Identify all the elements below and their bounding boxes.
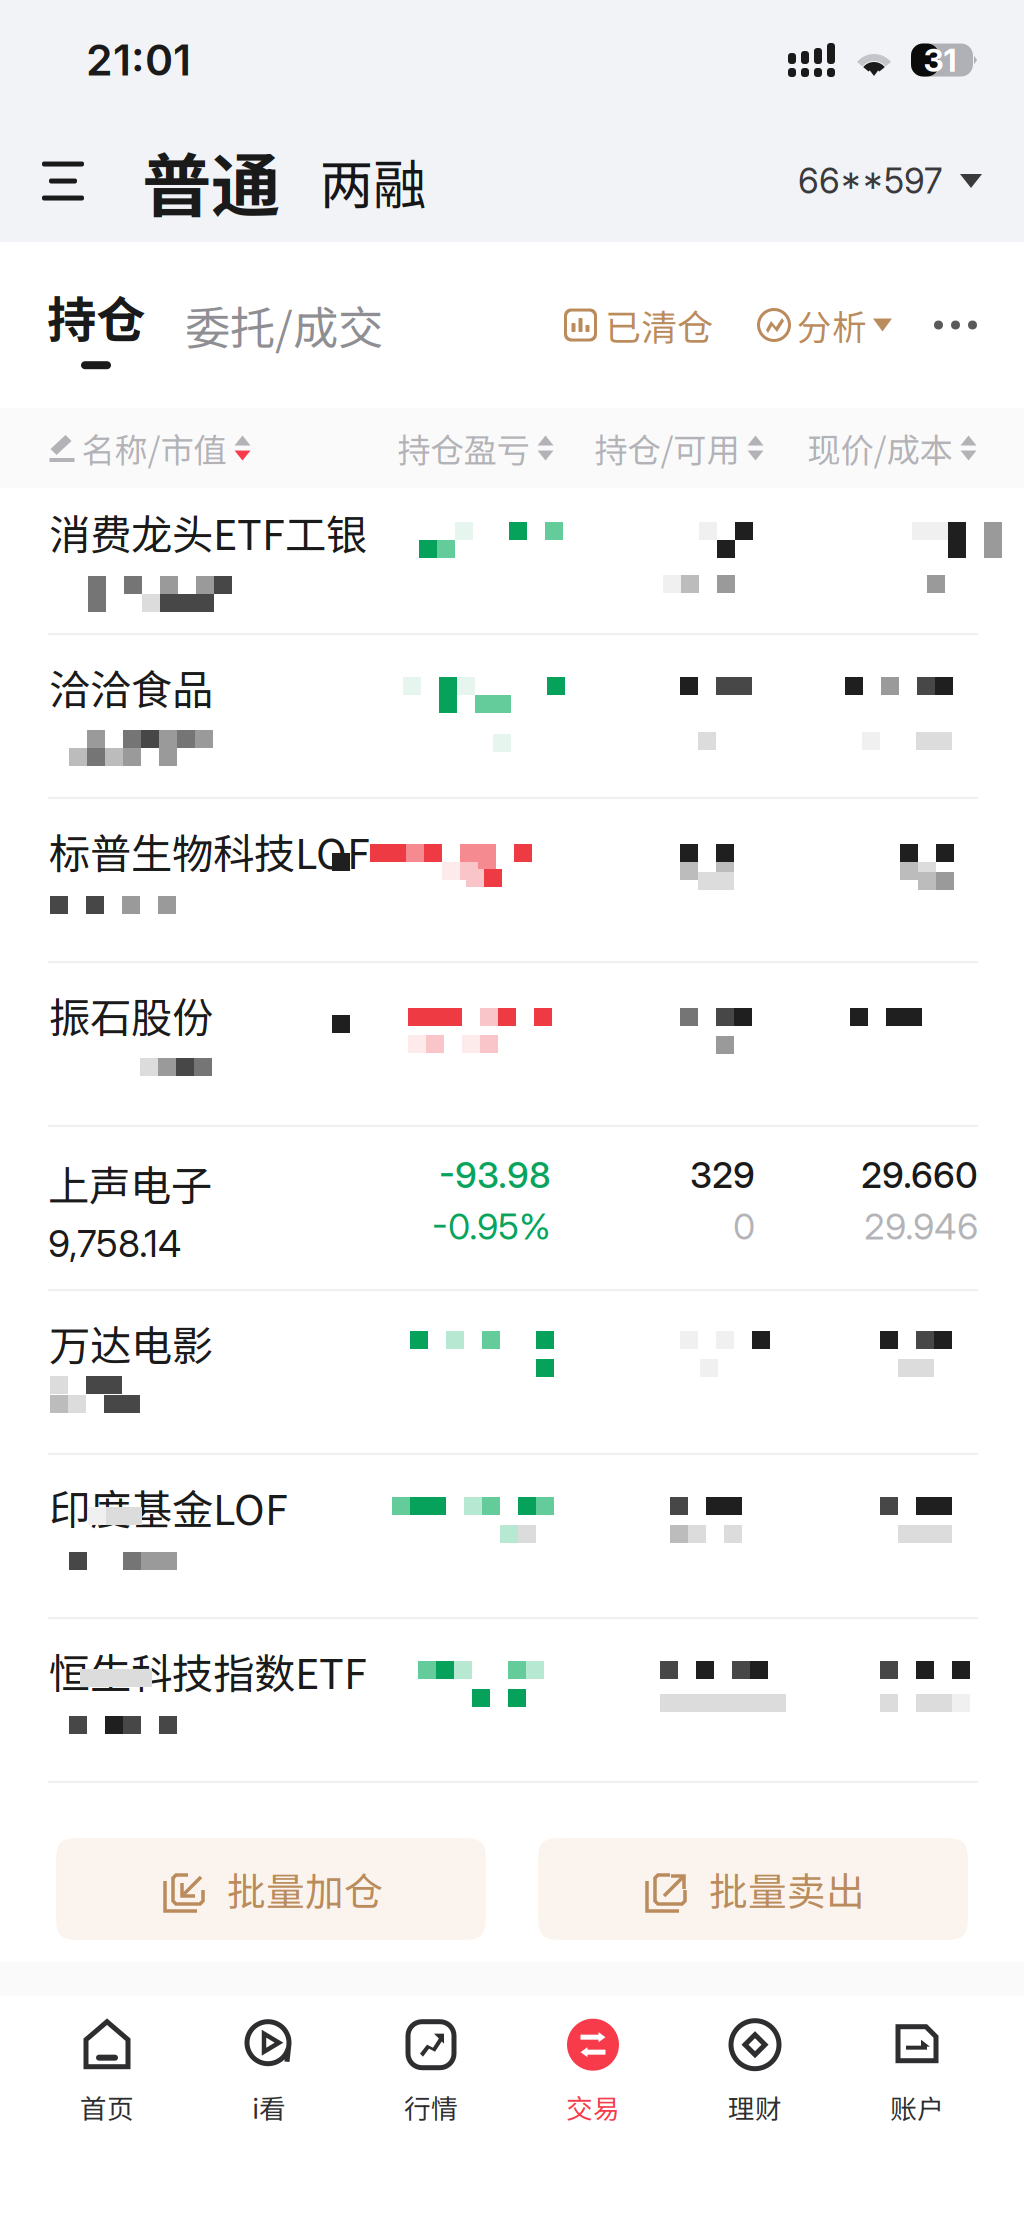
staticText: 66**597 (798, 160, 942, 202)
staticText: -93.98 (439, 1153, 551, 1197)
staticText: 标普生物科技LOF (49, 821, 370, 881)
staticText: 恒生科技指数ETF (49, 1641, 367, 1701)
button[interactable]: 振石股份 (0, 963, 1024, 1125)
staticText: 理财 (728, 2088, 782, 2126)
staticText: 31 (923, 41, 956, 79)
button[interactable]: 委托/成交 (145, 265, 383, 385)
button[interactable]: 万达电影 (0, 1291, 1024, 1453)
button[interactable]: 66**597 (798, 136, 982, 226)
staticText: 首页 (80, 2088, 134, 2126)
staticText: 普通 (142, 131, 280, 231)
button[interactable]: 标普生物科技LOF (0, 799, 1024, 961)
button[interactable]: 分析 (713, 265, 892, 385)
button[interactable]: 上声电子 (0, 1127, 1024, 1289)
staticText: 持仓 (47, 281, 145, 352)
button[interactable]: 持仓/可用 (553, 408, 763, 488)
staticText: 万达电影 (49, 1313, 213, 1373)
staticText: 名称/市值 (81, 424, 226, 472)
staticText: 329 (690, 1153, 755, 1197)
staticText: 29.660 (861, 1153, 978, 1197)
staticText: 现价/成本 (807, 424, 952, 472)
staticText: 交易 (566, 2088, 620, 2126)
staticText: 行情 (404, 2088, 458, 2126)
staticText: 9,758.14 (48, 1221, 181, 1266)
staticText: 已清仓 (605, 299, 713, 351)
button[interactable]: 洽洽食品 (0, 635, 1024, 797)
staticText: 21:01 (86, 34, 191, 86)
button[interactable]: 已清仓 (564, 265, 713, 385)
button[interactable]: 批量加仓 (56, 1838, 486, 1940)
button[interactable]: 批量卖出 (538, 1838, 968, 1940)
button[interactable]: 首页 (26, 1996, 188, 2146)
button[interactable]: 现价/成本 (763, 408, 976, 488)
button[interactable]: 印度基金LOF (0, 1455, 1024, 1617)
staticText: 29.946 (864, 1205, 978, 1248)
staticText: 批量卖出 (709, 1861, 865, 1917)
button[interactable]: 账户 (836, 1996, 998, 2146)
button[interactable]: 更多 (892, 265, 977, 385)
button[interactable]: 理财 (674, 1996, 836, 2146)
staticText: 两融 (320, 142, 426, 220)
button[interactable]: 持仓 (47, 265, 145, 385)
staticText: -0.95% (432, 1205, 551, 1248)
button[interactable]: 菜单 (42, 136, 84, 226)
staticText: 账户 (890, 2088, 944, 2126)
button[interactable]: 行情 (350, 1996, 512, 2146)
staticText: 分析 (797, 300, 867, 350)
staticText: 振石股份 (49, 985, 213, 1045)
button[interactable]: 名称/市值 (47, 408, 381, 488)
staticText: 持仓/可用 (594, 424, 739, 472)
staticText: 上声电子 (48, 1153, 212, 1213)
button[interactable]: 恒生科技指数ETF (0, 1619, 1024, 1781)
staticText: 批量加仓 (227, 1861, 383, 1917)
staticText: 洽洽食品 (49, 657, 213, 717)
staticText: 印度基金LOF (49, 1477, 288, 1537)
staticText: 持仓盈亏 (397, 424, 529, 472)
staticText: 委托/成交 (185, 292, 383, 358)
staticText: 消费龙头ETF工银 (49, 502, 367, 562)
button[interactable]: 消费龙头ETF工银 (0, 488, 1024, 633)
button[interactable]: i看 (188, 1996, 350, 2146)
staticText: 0 (733, 1205, 755, 1248)
button[interactable]: 持仓盈亏 (381, 408, 553, 488)
button[interactable]: 交易 (512, 1996, 674, 2146)
staticText: i看 (252, 2088, 286, 2126)
